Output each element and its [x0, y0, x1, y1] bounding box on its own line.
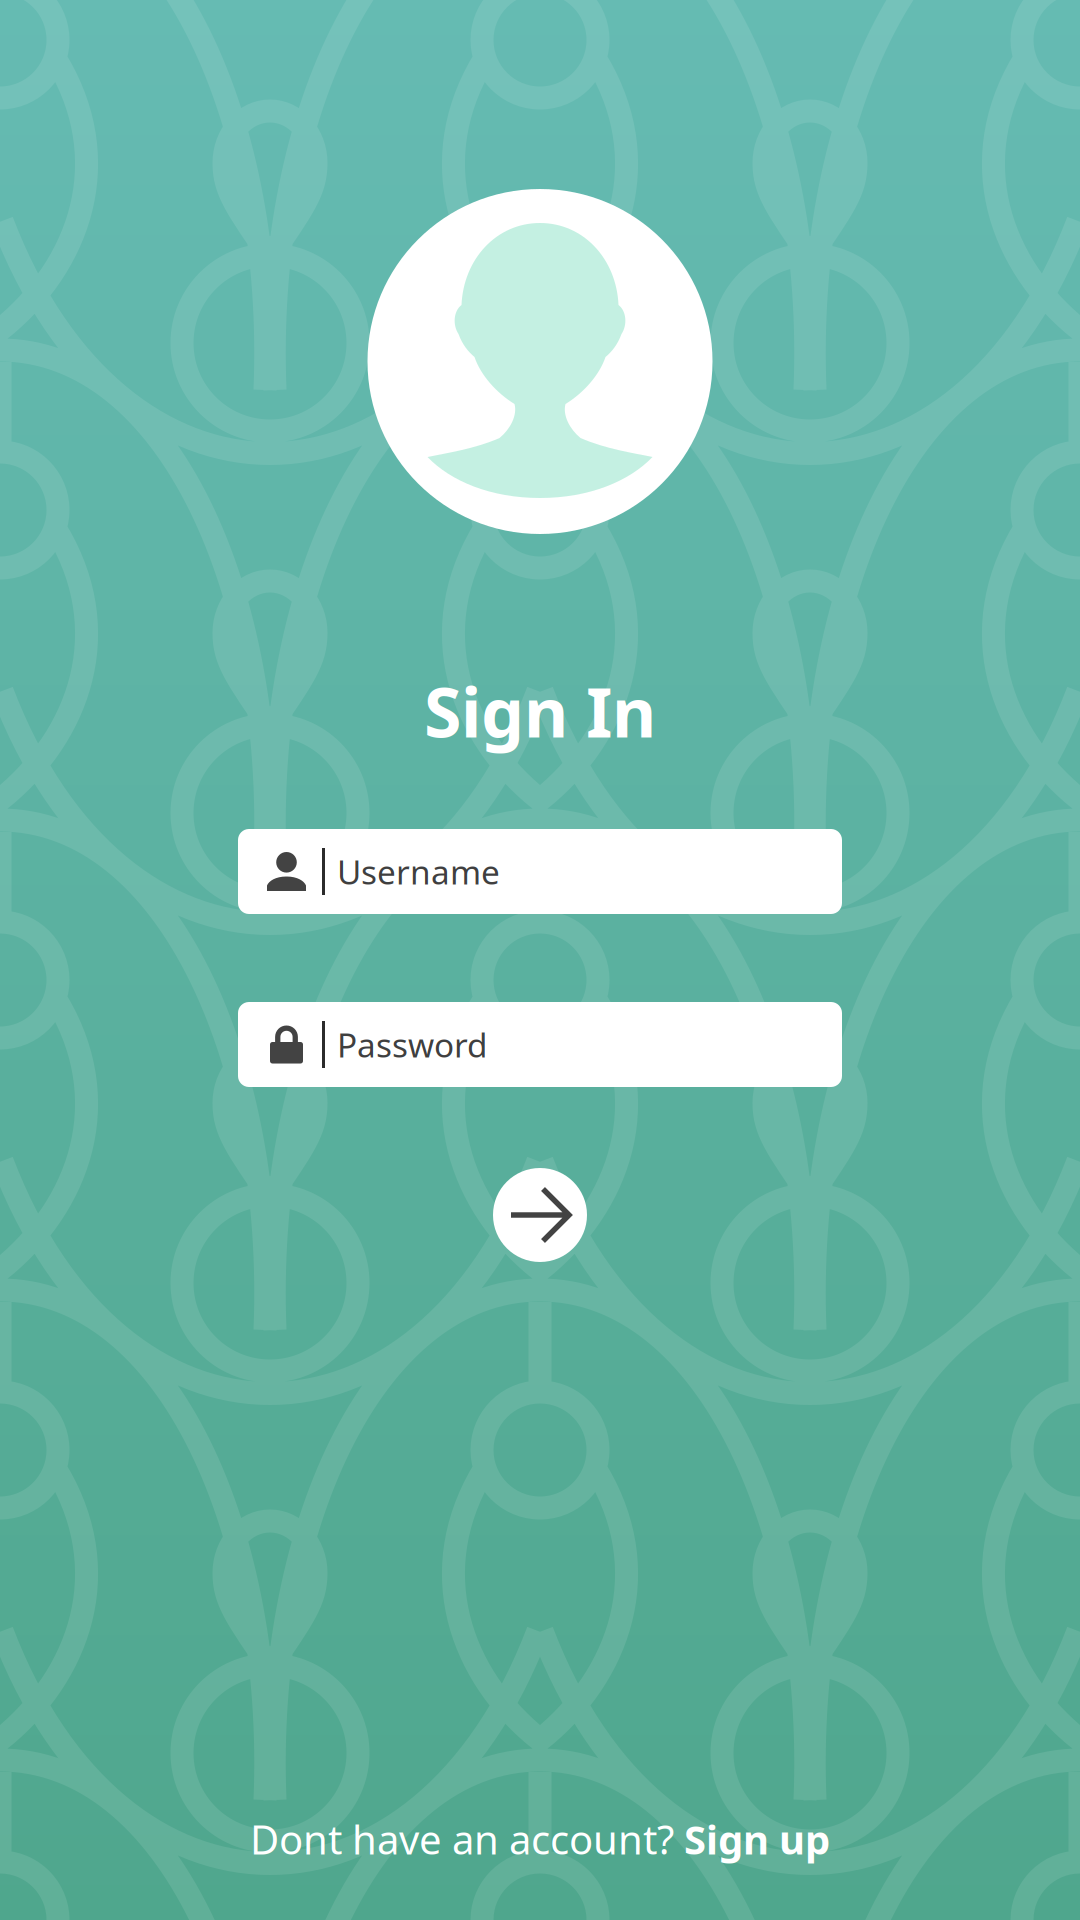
- staticText: Dont have an account?: [250, 1812, 684, 1865]
- staticText: Password: [337, 1022, 488, 1067]
- button[interactable]: Dont have an account?: [250, 1815, 830, 1863]
- button[interactable]: Password: [238, 1002, 842, 1087]
- staticText: Username: [337, 849, 500, 894]
- staticText: Sign In: [424, 666, 656, 756]
- button[interactable]: Continue: [493, 1168, 587, 1262]
- button[interactable]: Username: [238, 829, 842, 914]
- staticText: Sign up: [684, 1812, 830, 1865]
